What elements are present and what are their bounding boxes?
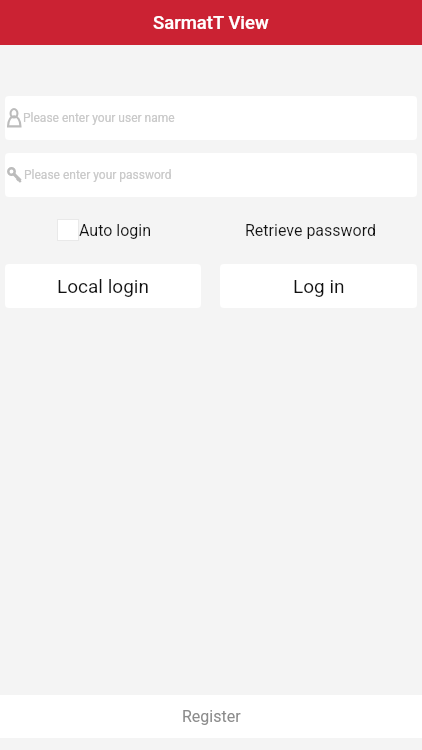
- button[interactable]: Password field: [5, 153, 417, 197]
- button[interactable]: Auto login: [57, 219, 152, 241]
- staticText: Auto login: [79, 221, 152, 240]
- button[interactable]: Local login: [5, 264, 201, 308]
- button[interactable]: User name field: [5, 96, 417, 140]
- staticText: Retrieve password: [245, 221, 377, 240]
- staticText: Register: [182, 707, 241, 726]
- other: Password: [7, 167, 22, 183]
- staticText: Please enter your user name: [23, 111, 175, 125]
- button[interactable]: Log in: [220, 264, 417, 308]
- other: User: [7, 108, 22, 128]
- button[interactable]: Retrieve password: [245, 221, 377, 240]
- staticText: Log in: [293, 275, 345, 297]
- staticText: Local login: [57, 275, 149, 297]
- staticText: Please enter your password: [24, 168, 172, 182]
- staticText: SarmatT View: [153, 12, 269, 34]
- button[interactable]: Register: [0, 695, 422, 738]
